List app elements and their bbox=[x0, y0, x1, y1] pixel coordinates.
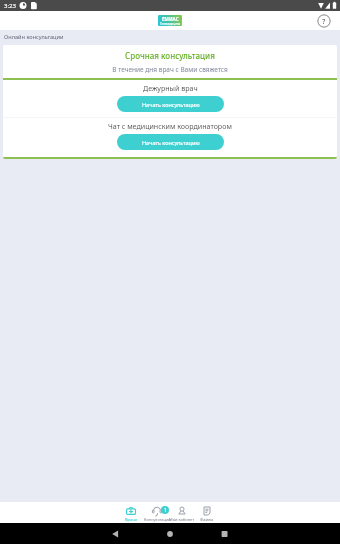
staticText: Онлайн консультации bbox=[4, 33, 64, 41]
staticText: Мой кабинет bbox=[169, 517, 195, 522]
button[interactable] bbox=[120, 502, 142, 523]
button[interactable]: Справка bbox=[317, 14, 331, 28]
button[interactable]: Начать консультацию bbox=[117, 134, 224, 150]
staticText: 1 bbox=[164, 507, 167, 514]
staticText: Начать консультацию bbox=[142, 139, 200, 146]
staticText: Файлы bbox=[200, 517, 214, 522]
button[interactable]: Начать консультацию bbox=[117, 96, 224, 112]
staticText: Консультации bbox=[144, 517, 171, 522]
button[interactable]: 1 bbox=[146, 502, 168, 523]
staticText: Чат с медицинским координатором bbox=[108, 121, 232, 131]
staticText: Врачи bbox=[125, 517, 138, 522]
staticText: В течение дня врач с Вами свяжется bbox=[3, 65, 337, 74]
staticText: ЕМИАС bbox=[162, 16, 179, 22]
button[interactable]: ЕМИАС Телемедицина bbox=[158, 15, 182, 26]
staticText: Телемедицина bbox=[160, 22, 180, 26]
button[interactable] bbox=[171, 502, 193, 523]
button[interactable] bbox=[196, 502, 218, 523]
staticText: ? bbox=[322, 16, 326, 26]
staticText: 3:23 bbox=[4, 2, 16, 10]
staticText: Начать консультацию bbox=[142, 101, 200, 108]
staticText: Дежурный врач bbox=[143, 83, 198, 93]
staticText: Срочная консультация bbox=[3, 50, 337, 61]
